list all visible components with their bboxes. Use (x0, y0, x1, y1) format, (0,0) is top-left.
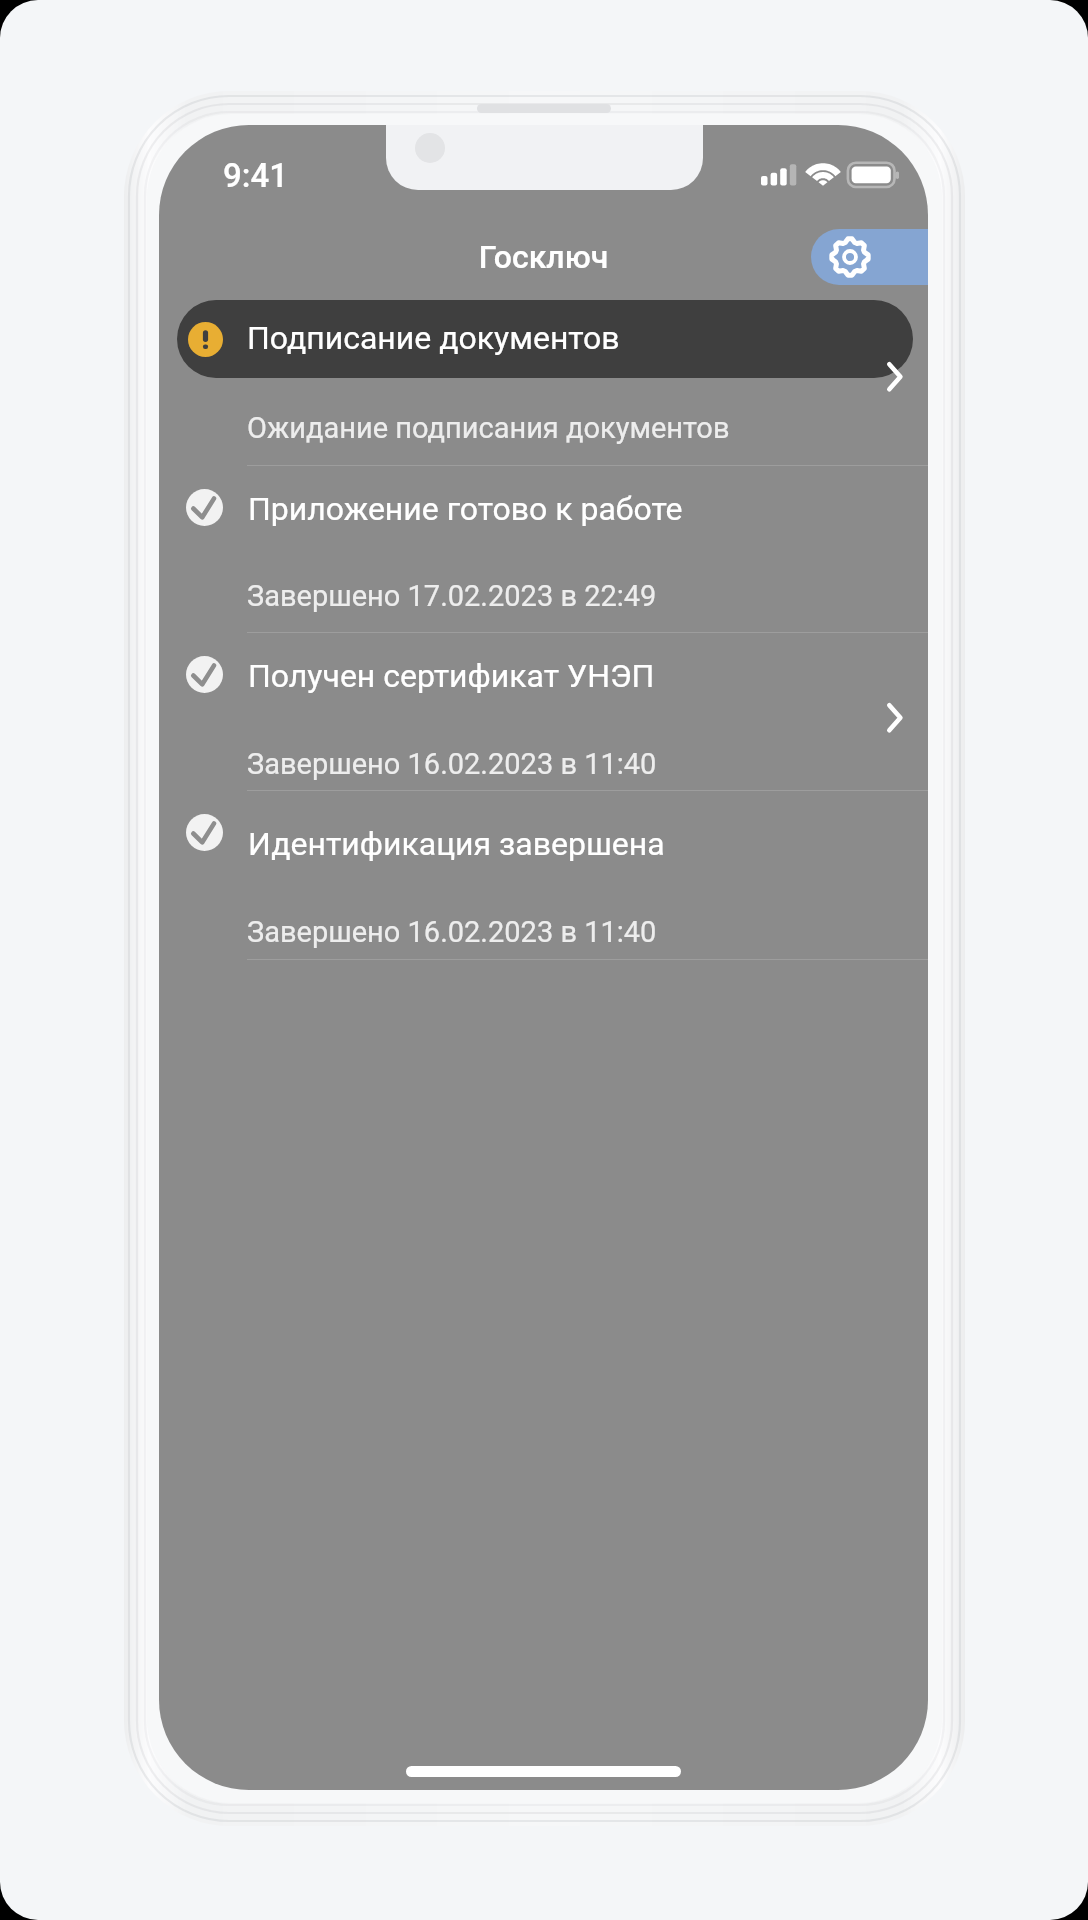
button[interactable]: Идентификация завершена (159, 790, 928, 959)
staticText: Ожидание подписания документов (247, 411, 730, 445)
staticText: Подписание документов (247, 319, 620, 357)
button[interactable]: Получен сертификат УНЭП (159, 632, 928, 790)
button[interactable]: Приложение готово к работе (159, 465, 928, 632)
staticText: Госключ (159, 238, 928, 276)
button[interactable]: Settings (811, 229, 928, 285)
button[interactable]: Подписание документов (159, 292, 928, 465)
staticText: Идентификация завершена (248, 825, 665, 863)
staticText: Завершено 16.02.2023 в 11:40 (247, 747, 657, 781)
staticText: 9:41 (223, 156, 288, 195)
staticText: Завершено 16.02.2023 в 11:40 (247, 915, 657, 949)
staticText: Приложение готово к работе (248, 490, 683, 528)
staticText: Получен сертификат УНЭП (248, 657, 655, 695)
staticText: Завершено 17.02.2023 в 22:49 (247, 579, 657, 613)
